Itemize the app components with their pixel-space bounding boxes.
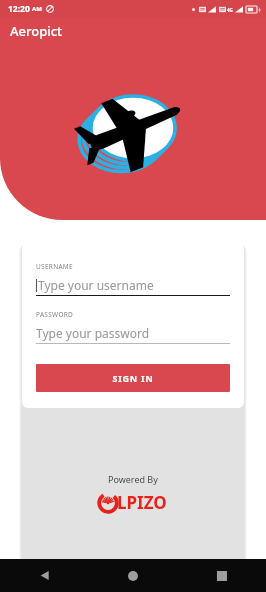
staticText: LPIZO <box>117 491 167 514</box>
staticText: Type your username <box>38 277 154 293</box>
staticText: Aeropict <box>10 22 63 40</box>
staticText: 4G <box>227 7 233 13</box>
staticText: Type your password <box>36 325 150 341</box>
staticText: USERNAME <box>36 262 73 271</box>
button[interactable]: Type your username <box>36 275 230 296</box>
button[interactable]: Home <box>88 559 177 592</box>
button[interactable]: SIGN IN <box>36 364 230 392</box>
staticText: PASSWORD <box>36 310 74 319</box>
staticText: 12:20 <box>8 3 30 15</box>
staticText: SIGN IN <box>112 372 154 384</box>
button[interactable]: Type your password <box>36 323 230 344</box>
staticText: AM <box>32 5 42 13</box>
button[interactable]: Recent apps <box>177 559 266 592</box>
button[interactable]: Back <box>0 559 88 592</box>
staticText: Powered By <box>108 473 158 485</box>
